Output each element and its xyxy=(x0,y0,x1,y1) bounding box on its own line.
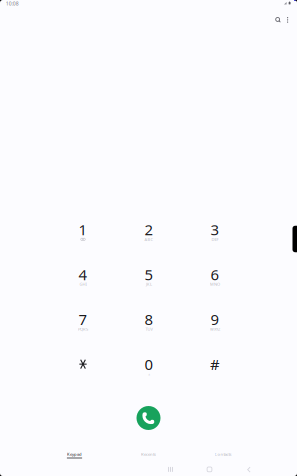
button[interactable]: More options xyxy=(280,11,295,28)
button[interactable]: 9 xyxy=(182,302,248,346)
staticText: 3 xyxy=(210,219,219,240)
staticText: 4 xyxy=(78,264,87,284)
staticText: GHI xyxy=(79,281,86,287)
button[interactable]: 7 xyxy=(50,302,116,346)
button[interactable]: 5 xyxy=(116,257,182,301)
staticText: 5 xyxy=(144,264,153,284)
button[interactable]: 8 xyxy=(116,302,182,346)
staticText: 1 xyxy=(78,219,87,240)
button[interactable]: # xyxy=(182,347,248,391)
staticText: 6 xyxy=(210,264,219,284)
button[interactable]: 2 xyxy=(116,212,182,256)
button[interactable]: Recent apps xyxy=(165,464,176,475)
staticText: 7 xyxy=(78,309,87,329)
button[interactable]: Recents xyxy=(111,441,185,463)
staticText: MNO xyxy=(210,281,220,287)
staticText: 9 xyxy=(210,309,219,329)
button[interactable]: 6 xyxy=(182,257,248,301)
staticText: 10:08 xyxy=(6,0,19,7)
button[interactable]: Back xyxy=(243,464,254,475)
staticText: 2 xyxy=(144,219,153,240)
button[interactable]: Home xyxy=(204,464,215,475)
staticText: + xyxy=(148,371,150,377)
staticText: Keypad xyxy=(67,451,82,457)
button[interactable]: 0 xyxy=(116,347,182,391)
button[interactable]: Contacts xyxy=(186,441,260,463)
staticText: Contacts xyxy=(214,451,231,457)
staticText: Recents xyxy=(141,451,156,457)
button[interactable]: 4 xyxy=(50,257,116,301)
button[interactable]: Search xyxy=(269,11,286,28)
button[interactable]: 1 xyxy=(50,212,116,256)
button[interactable]: Call xyxy=(130,400,166,436)
staticText: PQRS xyxy=(78,326,88,332)
button[interactable]: Star xyxy=(50,347,116,391)
staticText: # xyxy=(210,354,220,374)
staticText: DEF xyxy=(211,236,218,242)
staticText: TUV xyxy=(145,326,152,332)
staticText: WXYZ xyxy=(210,326,220,332)
button[interactable]: Keypad xyxy=(37,441,111,463)
staticText: 0 xyxy=(144,354,153,374)
staticText: ABC xyxy=(144,236,153,242)
staticText: JKL xyxy=(146,281,152,287)
button[interactable]: 3 xyxy=(182,212,248,256)
staticText: 8 xyxy=(144,309,153,329)
